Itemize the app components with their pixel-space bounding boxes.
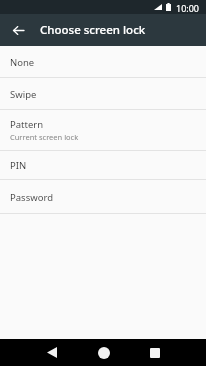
button[interactable]: Recent apps (143, 341, 166, 364)
button[interactable]: PIN (0, 151, 206, 180)
staticText: None (10, 56, 35, 69)
button[interactable]: Navigate up (6, 18, 30, 42)
staticText: 10:00 (176, 2, 200, 14)
staticText: PIN (10, 159, 27, 172)
button[interactable]: Home (92, 341, 115, 364)
staticText: Current screen lock (10, 132, 79, 142)
staticText: Choose screen lock (40, 22, 146, 38)
staticText: Pattern (10, 118, 44, 131)
staticText: Password (10, 191, 53, 204)
button[interactable]: Password (0, 180, 206, 214)
staticText: Swipe (10, 88, 37, 101)
button[interactable]: Swipe (0, 78, 206, 110)
button[interactable]: Pattern (0, 110, 206, 151)
button[interactable]: None (0, 46, 206, 78)
button[interactable]: Back (40, 341, 63, 364)
